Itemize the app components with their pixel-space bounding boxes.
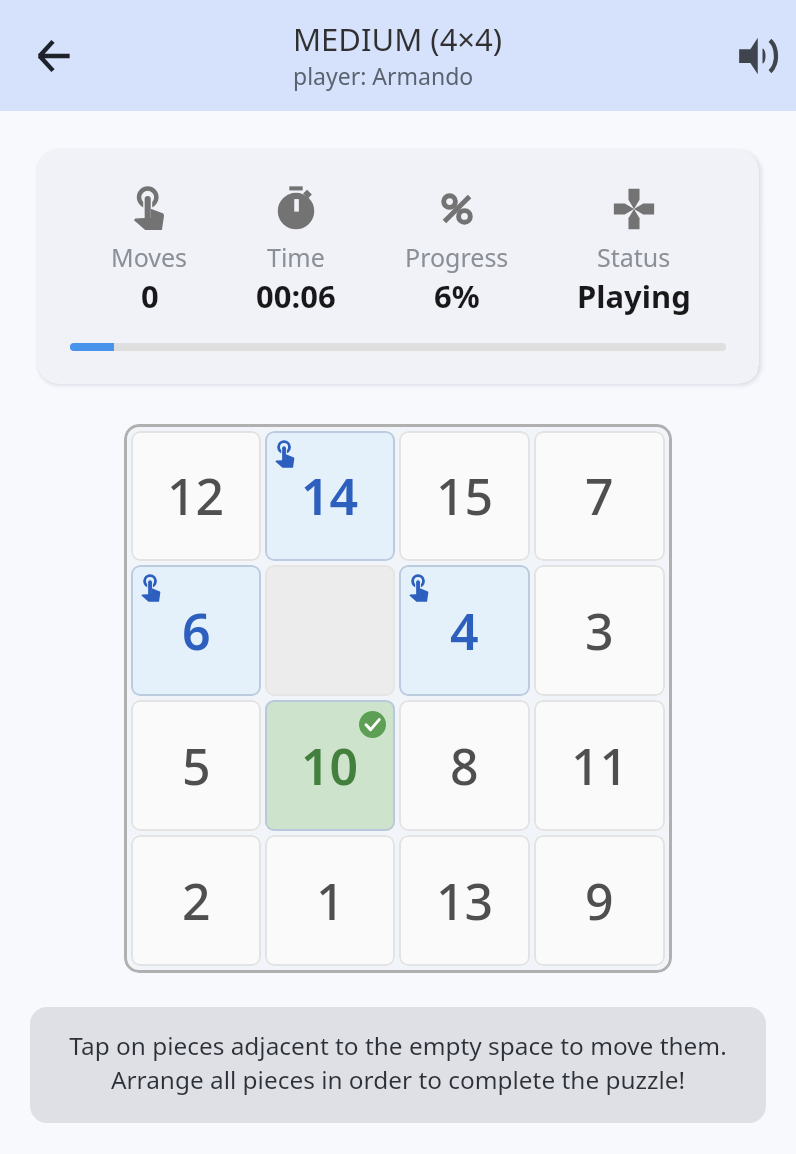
button[interactable]: 2 xyxy=(131,835,261,966)
staticText: Playing xyxy=(577,275,691,317)
staticText: 6 xyxy=(182,597,211,665)
button[interactable]: 9 xyxy=(534,835,665,966)
staticText: Time xyxy=(267,240,325,274)
button[interactable]: 10 xyxy=(265,700,395,831)
staticText: 6% xyxy=(434,275,480,317)
staticText: player: Armando xyxy=(293,60,474,91)
staticText: 15 xyxy=(436,462,494,530)
staticText: 7 xyxy=(585,462,614,530)
staticText: 8 xyxy=(450,732,479,800)
button[interactable]: 4 xyxy=(399,565,530,696)
staticText: 12 xyxy=(167,462,225,530)
staticText: 11 xyxy=(571,732,629,800)
staticText: Tap on pieces adjacent to the empty spac… xyxy=(69,1029,727,1096)
button[interactable]: 15 xyxy=(399,431,530,561)
staticText: 10 xyxy=(301,732,359,800)
staticText: Status xyxy=(597,240,671,274)
button[interactable]: 11 xyxy=(534,700,665,831)
button[interactable]: 5 xyxy=(131,700,261,831)
button[interactable]: 6 xyxy=(131,565,261,696)
staticText: Progress xyxy=(405,240,509,274)
staticText: 9 xyxy=(585,867,614,935)
button[interactable]: Back xyxy=(18,20,90,92)
staticText: Moves xyxy=(111,240,188,274)
staticText: 14 xyxy=(301,462,359,530)
button[interactable]: 7 xyxy=(534,431,665,561)
staticText: 00:06 xyxy=(256,275,336,317)
button[interactable]: 3 xyxy=(534,565,665,696)
staticText: 5 xyxy=(182,732,211,800)
button[interactable]: 13 xyxy=(399,835,530,966)
staticText: 0 xyxy=(141,275,159,317)
staticText: 1 xyxy=(316,867,345,935)
staticText: 3 xyxy=(585,597,614,665)
button[interactable]: 1 xyxy=(265,835,395,966)
staticText: 4 xyxy=(450,597,479,665)
button[interactable]: 12 xyxy=(131,431,261,561)
staticText: 2 xyxy=(182,867,211,935)
button[interactable]: Sound xyxy=(723,22,791,90)
button[interactable]: 8 xyxy=(399,700,530,831)
staticText: MEDIUM (4×4) xyxy=(293,18,503,60)
staticText: 13 xyxy=(436,867,494,935)
button[interactable]: 14 xyxy=(265,431,395,561)
